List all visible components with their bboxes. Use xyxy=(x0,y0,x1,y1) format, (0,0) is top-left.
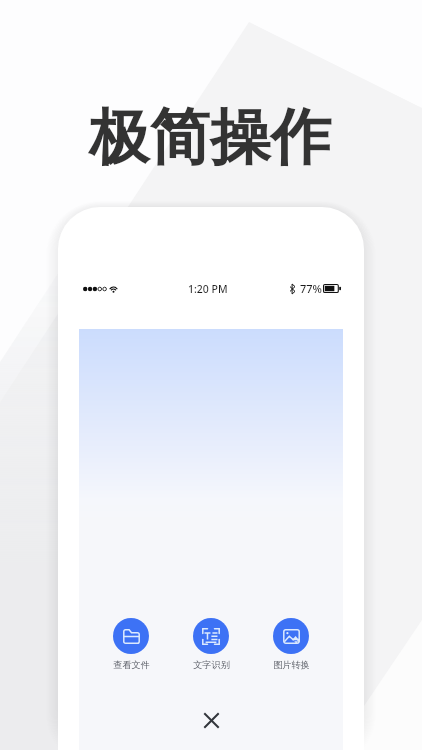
staticText: 77% xyxy=(300,281,322,296)
button[interactable]: 查看文件 xyxy=(100,618,162,671)
staticText: 图片转换 xyxy=(273,659,310,671)
button[interactable]: 图片转换 xyxy=(260,618,322,671)
staticText: 极简操作 xyxy=(89,100,331,176)
staticText: 查看文件 xyxy=(113,659,150,671)
staticText: 1:20 PM xyxy=(188,282,228,296)
staticText: 文字识别 xyxy=(193,659,230,671)
button[interactable]: Close xyxy=(195,704,227,736)
button[interactable]: 文字识别 xyxy=(180,618,242,671)
